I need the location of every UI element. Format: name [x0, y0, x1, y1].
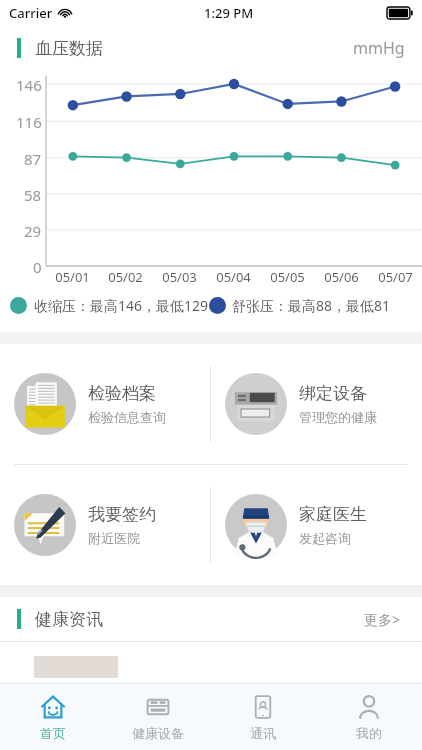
button[interactable]: 健康设备	[105, 684, 210, 750]
staticText: 116	[16, 112, 42, 132]
button[interactable]: 检验档案	[0, 344, 210, 464]
staticText: 家庭医生	[299, 504, 367, 525]
staticText: 健康设备	[132, 725, 184, 741]
staticText: 05/05	[270, 268, 305, 286]
staticText: 58	[24, 185, 42, 205]
button[interactable]: 通讯	[210, 684, 316, 750]
staticText: 05/06	[324, 268, 359, 286]
staticText: 通讯	[250, 725, 276, 741]
staticText: 健康资讯	[35, 609, 103, 630]
staticText: 我的	[356, 725, 382, 741]
staticText: 146	[16, 75, 42, 95]
staticText: 管理您的健康	[299, 409, 377, 425]
staticText: 29	[24, 221, 42, 241]
staticText: 血压数据	[35, 38, 103, 59]
staticText: 检验档案	[88, 383, 156, 404]
button[interactable]: 更多>	[360, 604, 405, 635]
staticText: 87	[24, 149, 42, 169]
button[interactable]: 绑定设备	[211, 344, 422, 464]
button[interactable]: 首页	[0, 684, 105, 750]
staticText: 绑定设备	[299, 383, 367, 404]
staticText: 05/07	[378, 268, 413, 286]
button[interactable]: 家庭医生	[211, 465, 422, 585]
staticText: 首页	[40, 725, 66, 741]
staticText: 检验信息查询	[88, 409, 166, 425]
staticText: 05/01	[55, 268, 90, 286]
staticText: 发起咨询	[299, 530, 351, 546]
staticText: 1:29 PM	[204, 4, 254, 22]
staticText: 舒张压：最高88，最低81	[232, 296, 391, 315]
staticText: 0	[33, 257, 42, 277]
staticText: mmHg	[353, 37, 405, 59]
staticText: 收缩压：最高146，最低129	[34, 296, 209, 315]
staticText: 我要签约	[88, 504, 156, 525]
staticText: 附近医院	[88, 530, 140, 546]
button[interactable]: 我的	[316, 684, 422, 750]
staticText: Carrier	[9, 4, 53, 22]
staticText: 更多>	[364, 610, 401, 629]
staticText: 05/04	[216, 268, 251, 286]
button[interactable]: 我要签约	[0, 465, 210, 585]
staticText: 05/02	[108, 268, 143, 286]
staticText: 05/03	[162, 268, 197, 286]
